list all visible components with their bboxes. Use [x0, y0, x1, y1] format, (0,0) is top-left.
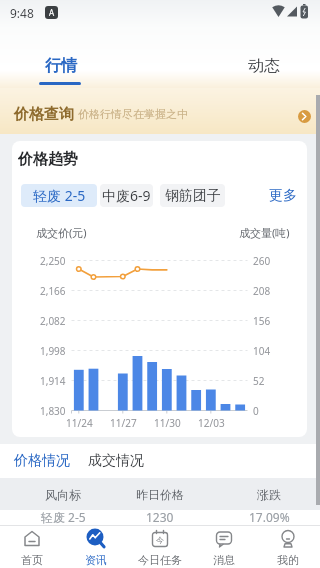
button[interactable]: 钢筋团子 [160, 184, 225, 207]
staticText: 我的 [277, 553, 299, 567]
staticText: 2,250 [40, 254, 66, 268]
staticText: 消息 [213, 553, 235, 567]
staticText: A [49, 7, 55, 18]
button[interactable]: 我的 [256, 525, 320, 568]
staticText: 今日任务 [138, 553, 182, 567]
staticText: 成交量(吨) [239, 225, 290, 240]
staticText: 动态 [248, 56, 280, 76]
staticText: 208 [253, 284, 271, 298]
staticText: 今 [156, 535, 164, 545]
button[interactable]: 行情 [36, 52, 85, 80]
staticText: 2,166 [40, 284, 66, 298]
staticText: 1,914 [40, 374, 66, 388]
staticText: 资讯 [85, 553, 107, 567]
staticText: 成交情况 [88, 452, 144, 470]
staticText: 1230 [146, 509, 174, 525]
staticText: 价格情况 [14, 452, 70, 470]
staticText: 2,082 [40, 314, 66, 328]
staticText: 价格查询 [14, 105, 74, 124]
staticText: 昨日价格 [136, 487, 184, 502]
button[interactable]: 首页 [0, 525, 64, 568]
button[interactable]: 轻废 2-5 [21, 184, 97, 207]
staticText: 首页 [21, 553, 43, 567]
staticText: 涨跌 [257, 487, 281, 502]
staticText: 0 [253, 404, 259, 418]
staticText: 17.09% [249, 509, 290, 525]
button[interactable]: 消息 [192, 525, 256, 568]
staticText: 1,830 [40, 404, 66, 418]
staticText: 11/30 [154, 416, 181, 430]
staticText: 价格趋势 [18, 150, 78, 168]
button[interactable]: 资讯 [64, 525, 128, 568]
staticText: 中废6-9 [102, 186, 151, 205]
staticText: 成交价(元) [36, 225, 87, 240]
staticText: 轻废 2-5 [41, 509, 86, 525]
staticText: 9:48 [10, 5, 34, 21]
staticText: 1,998 [40, 344, 66, 358]
staticText: 156 [253, 314, 271, 328]
staticText: 行情 [45, 56, 77, 76]
staticText: 52 [253, 374, 265, 388]
staticText: 260 [253, 254, 271, 268]
button[interactable]: 动态 [240, 52, 288, 80]
staticText: 104 [253, 344, 271, 358]
staticText: 11/27 [110, 416, 137, 430]
button[interactable]: 价格查询 [0, 88, 320, 134]
staticText: 更多 [269, 187, 297, 205]
button[interactable]: 中废6-9 [100, 184, 153, 207]
button[interactable]: 今 [128, 525, 192, 568]
staticText: 钢筋团子 [165, 187, 221, 205]
button[interactable]: 更多 [269, 184, 297, 207]
staticText: 风向标 [45, 487, 81, 502]
button[interactable]: 价格情况 [10, 444, 74, 478]
staticText: 轻废 2-5 [33, 186, 86, 205]
button[interactable]: 成交情况 [84, 444, 148, 478]
staticText: 12/03 [198, 416, 225, 430]
staticText: 11/24 [66, 416, 93, 430]
staticText: 价格行情尽在掌握之中 [78, 107, 188, 121]
